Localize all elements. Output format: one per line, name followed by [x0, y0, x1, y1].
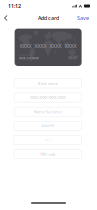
staticText: XXXX XXXX XXXX XXXX	[20, 42, 77, 49]
staticText: CARDHOLDER NAME	[19, 54, 33, 56]
button[interactable]: Bank name	[14, 79, 81, 88]
button[interactable]: Name Surname	[14, 107, 81, 116]
staticText: NAME SURNAME	[19, 56, 39, 60]
button[interactable]: Save	[75, 12, 90, 24]
staticText: VALID THRU	[70, 54, 78, 56]
staticText: PIN code	[40, 151, 55, 157]
button[interactable]: •••	[14, 135, 81, 145]
staticText: Name Surname	[34, 109, 62, 114]
staticText: Add card	[38, 14, 59, 22]
button[interactable]: Back	[1, 13, 10, 22]
staticText: •••	[45, 137, 51, 143]
staticText: 00/00	[69, 56, 78, 60]
button[interactable]: XXXX XXXX XXXX XXXX	[14, 93, 81, 102]
staticText: MM/YY	[41, 123, 54, 128]
staticText: Save	[77, 14, 89, 22]
button[interactable]: MM/YY	[14, 121, 81, 130]
staticText: 11:12	[8, 2, 21, 10]
staticText: XXXX XXXX XXXX XXXX	[30, 95, 65, 100]
staticText: Bank name	[38, 81, 58, 86]
button[interactable]: PIN code	[14, 150, 81, 159]
